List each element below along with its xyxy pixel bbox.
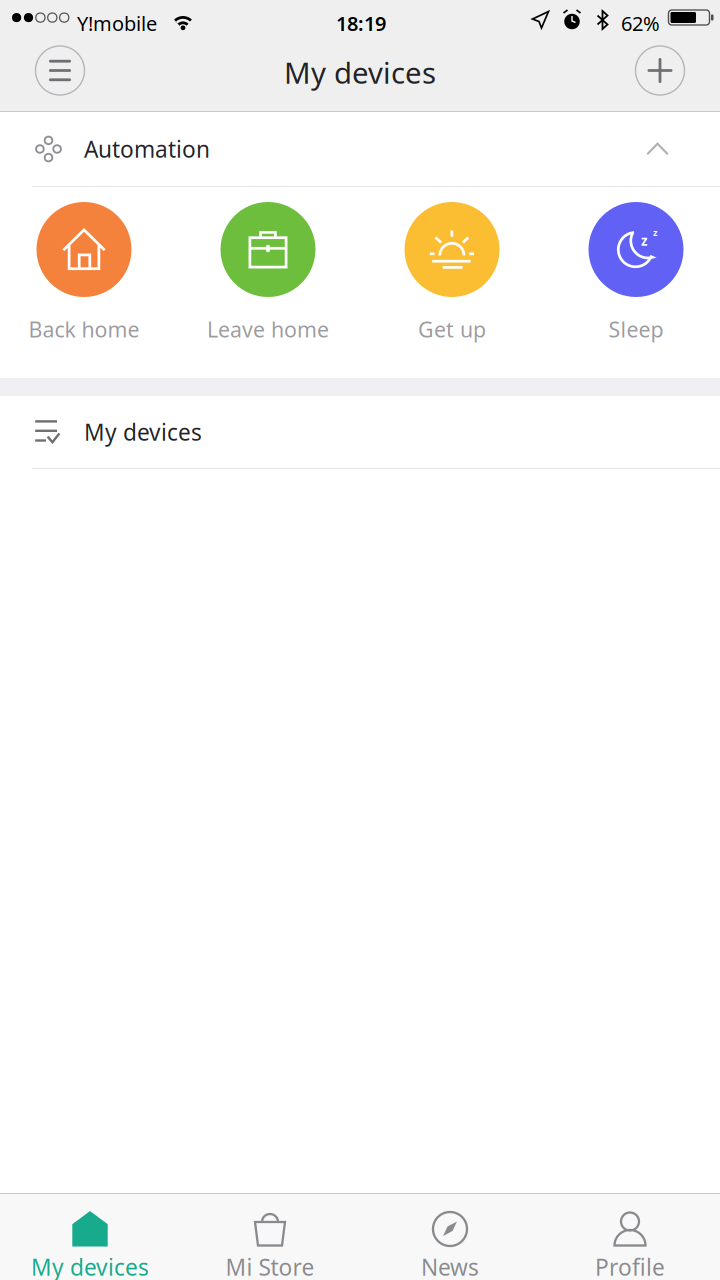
staticText: My devices xyxy=(284,53,436,92)
staticText: Mi Store xyxy=(225,1252,314,1280)
button[interactable]: Add device xyxy=(629,39,691,101)
button[interactable]: Automation xyxy=(0,112,720,186)
staticText: Automation xyxy=(84,134,210,164)
staticText: Back home xyxy=(28,315,139,343)
button[interactable]: My devices xyxy=(0,396,720,468)
staticText: 62% xyxy=(621,10,660,37)
staticText: Sleep xyxy=(608,315,663,343)
button[interactable]: Profile xyxy=(540,1194,720,1280)
button[interactable]: Back home xyxy=(0,202,168,343)
button[interactable]: Get up xyxy=(368,202,536,343)
staticText: News xyxy=(421,1252,479,1280)
staticText: Get up xyxy=(418,315,486,343)
button[interactable]: My devices xyxy=(0,1194,180,1280)
staticText: Y!mobile xyxy=(77,10,157,37)
staticText: 18:19 xyxy=(336,10,386,37)
button[interactable]: Menu xyxy=(29,39,91,101)
button[interactable]: News xyxy=(360,1194,540,1280)
staticText: z xyxy=(653,226,658,239)
staticText: My devices xyxy=(84,417,202,447)
staticText: My devices xyxy=(31,1252,149,1280)
button[interactable]: Mi Store xyxy=(180,1194,360,1280)
staticText: Leave home xyxy=(207,315,329,343)
staticText: z xyxy=(641,232,648,249)
button[interactable]: Leave home xyxy=(184,202,352,343)
staticText: Profile xyxy=(595,1252,665,1280)
button[interactable]: z xyxy=(552,202,720,343)
